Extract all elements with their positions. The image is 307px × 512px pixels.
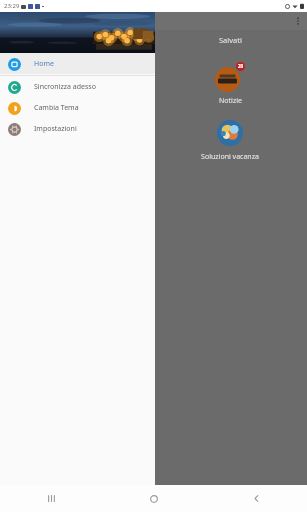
staticText: Non lette xyxy=(60,35,93,45)
button[interactable]: Back xyxy=(205,485,307,512)
staticText: Cambia Tema xyxy=(34,103,79,113)
button[interactable]: Salvati xyxy=(153,30,307,50)
staticText: Home xyxy=(34,59,54,69)
button[interactable]: Cambia Tema xyxy=(0,97,155,118)
button[interactable]: Sincronizza adesso xyxy=(0,76,155,97)
button[interactable]: Recents xyxy=(0,485,103,512)
staticText: t xyxy=(74,122,81,144)
staticText: 23:29 xyxy=(4,2,20,10)
button[interactable]: Non lette xyxy=(0,30,153,50)
button[interactable]: t xyxy=(0,116,153,164)
staticText: 20 xyxy=(238,63,244,69)
button[interactable]: Home xyxy=(103,485,205,512)
button[interactable]: Soluzioni vacanza xyxy=(153,116,307,164)
staticText: Sincronizza adesso xyxy=(34,82,96,92)
staticText: Salvati xyxy=(219,35,242,45)
button[interactable]: Salvati xyxy=(0,60,153,108)
button[interactable]: Impostazioni xyxy=(0,118,155,139)
staticText: Notizie xyxy=(219,96,242,106)
button[interactable]: Home xyxy=(0,53,155,74)
button[interactable]: 20 xyxy=(153,60,307,108)
staticText: Soluzioni vacanza xyxy=(201,152,259,162)
button[interactable]: More options xyxy=(289,12,307,30)
staticText: Impostazioni xyxy=(34,124,77,134)
